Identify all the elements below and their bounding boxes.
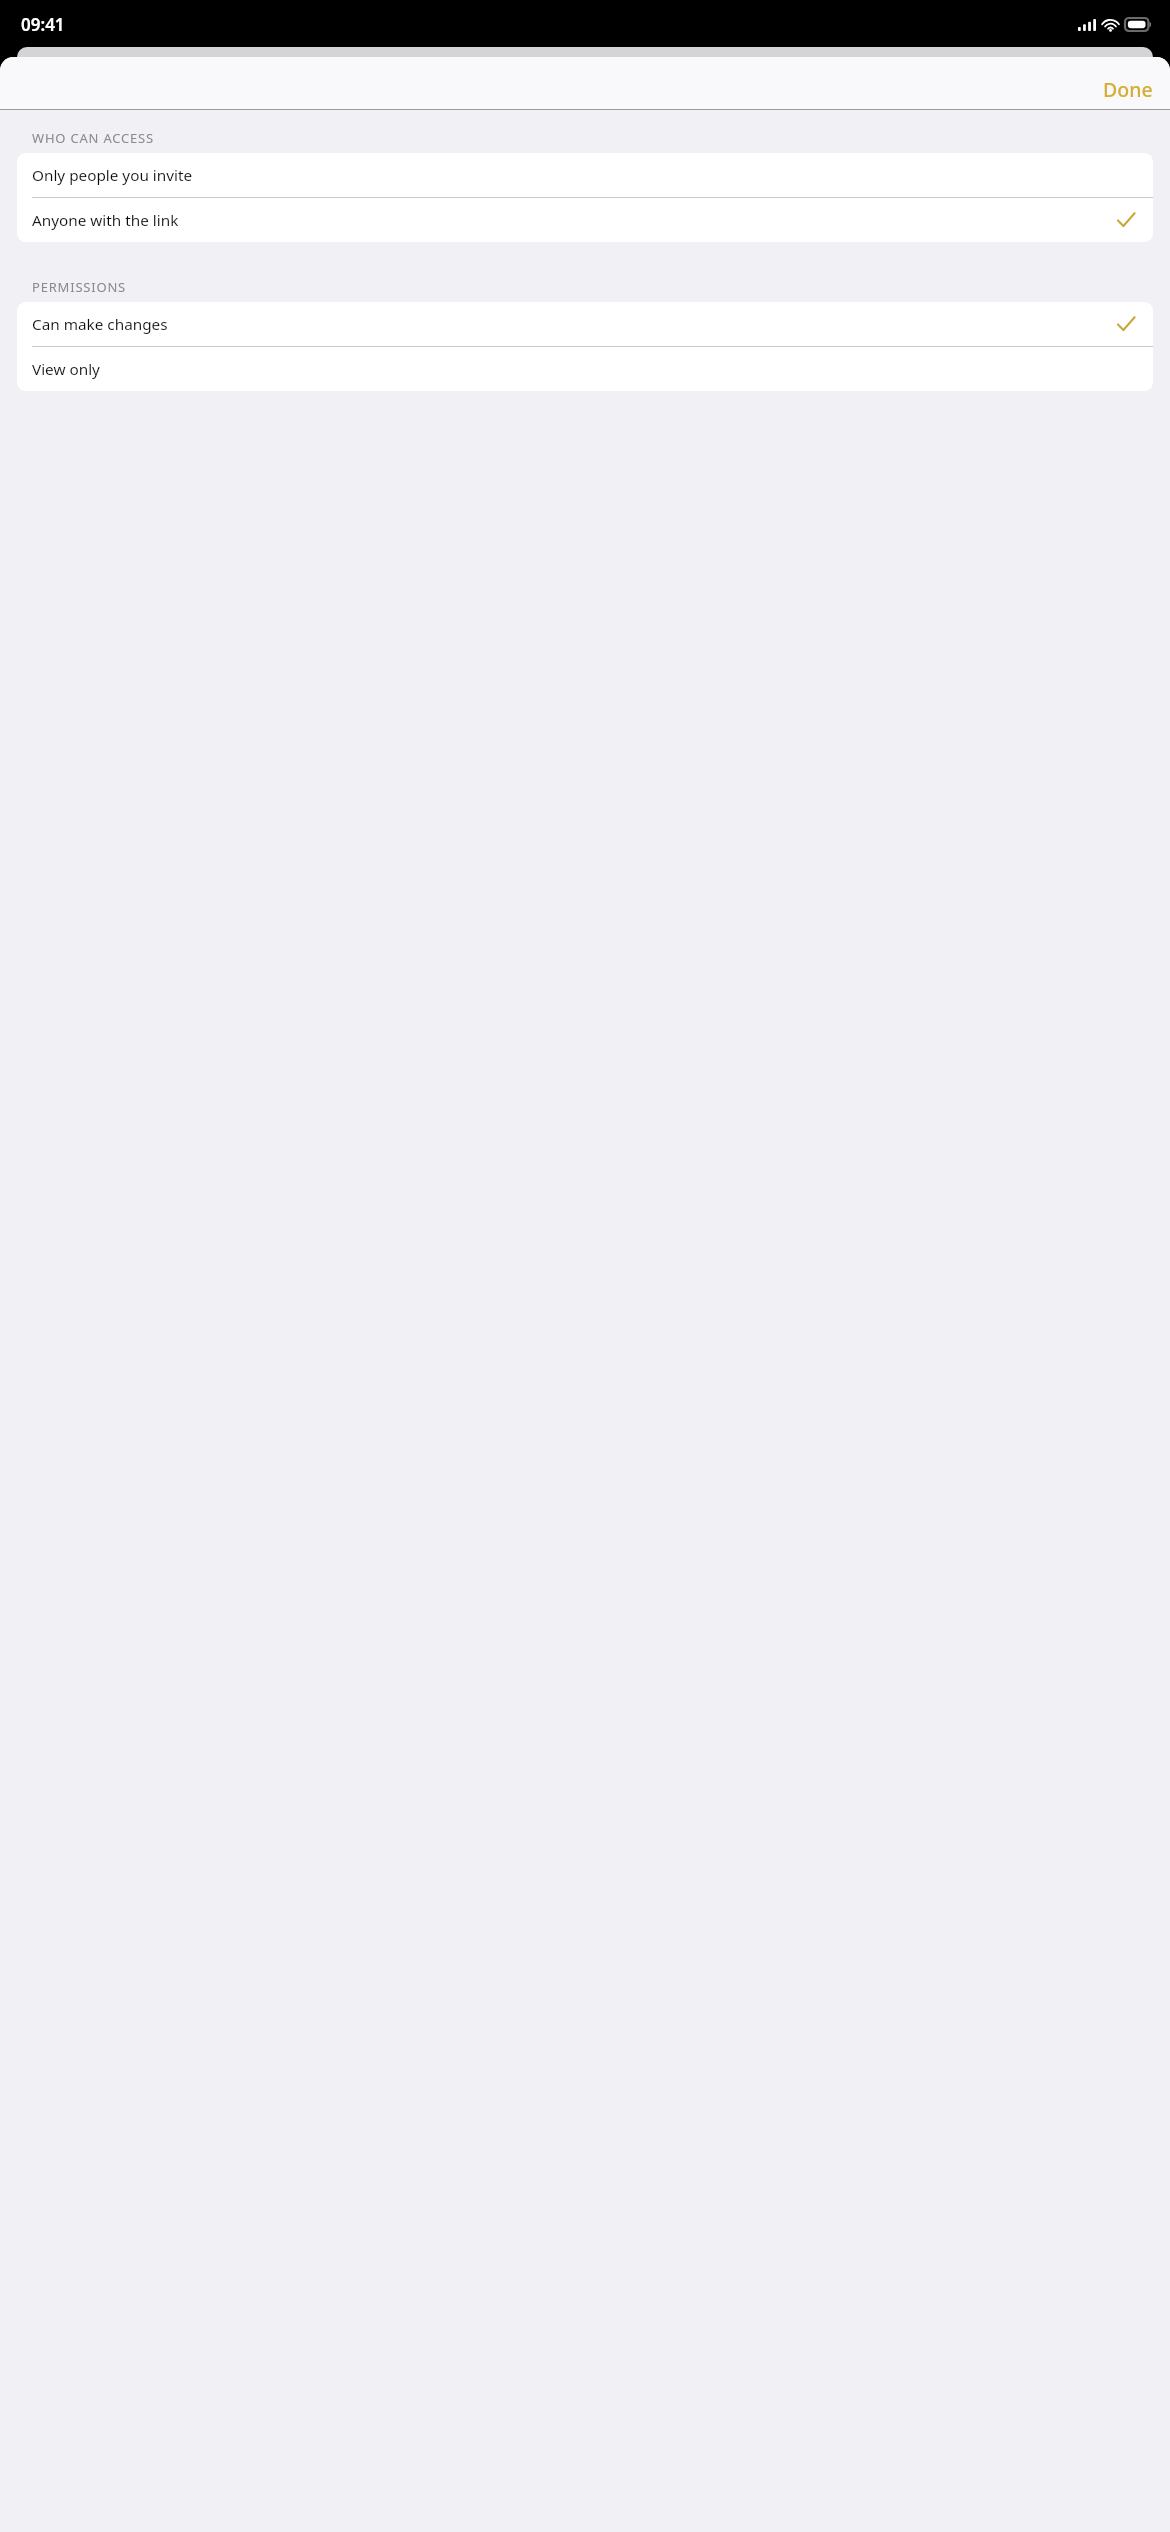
button[interactable]: View only: [17, 347, 1153, 391]
staticText: Anyone with the link: [32, 210, 1116, 231]
other: Selected: [1116, 314, 1136, 334]
staticText: Can make changes: [32, 314, 1116, 335]
staticText: Only people you invite: [32, 165, 1116, 186]
button[interactable]: Only people you invite: [17, 153, 1153, 197]
staticText: View only: [32, 359, 1116, 380]
button[interactable]: Anyone with the link: [17, 198, 1153, 242]
button[interactable]: Done: [1086, 68, 1170, 111]
staticText: 09:41: [21, 13, 65, 36]
staticText: PERMISSIONS: [32, 278, 127, 296]
button[interactable]: Can make changes: [17, 302, 1153, 346]
other: Selected: [1116, 210, 1136, 230]
staticText: Done: [1103, 76, 1153, 103]
staticText: WHO CAN ACCESS: [32, 129, 154, 147]
